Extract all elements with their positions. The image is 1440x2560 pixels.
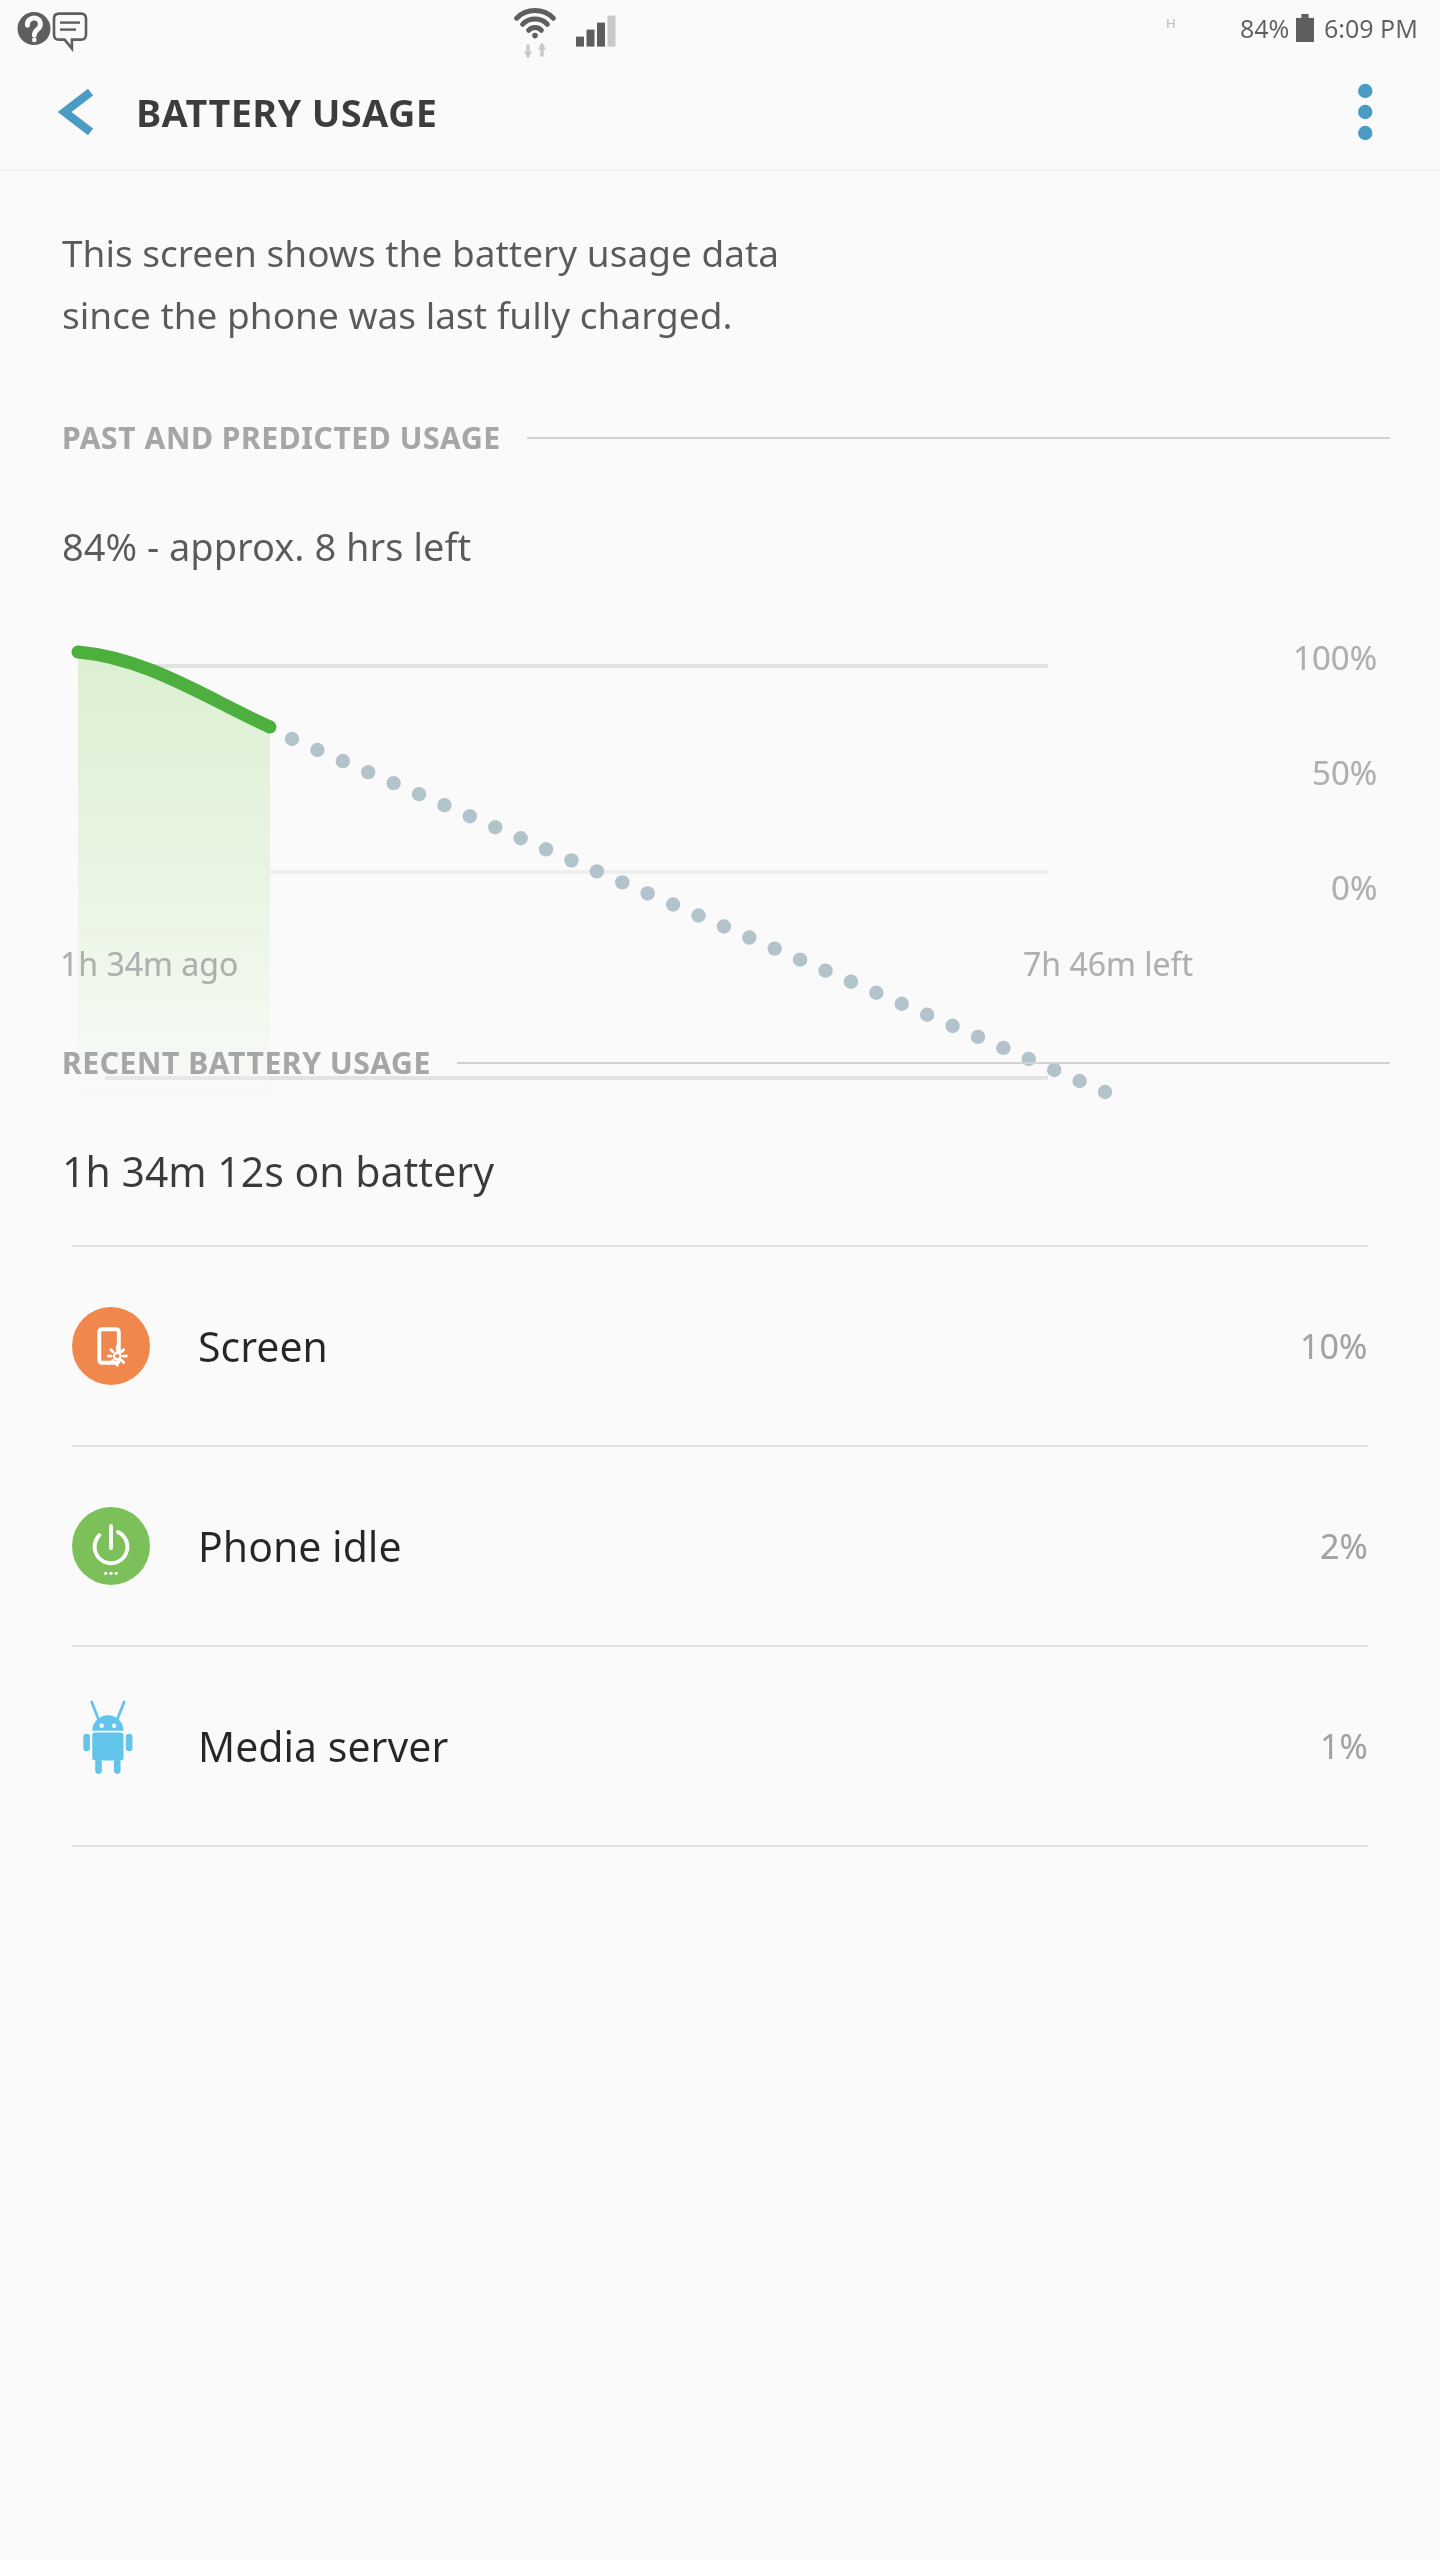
staticText: 100% (1293, 635, 1378, 680)
staticText: Media server (198, 1718, 449, 1774)
staticText: BATTERY USAGE (136, 86, 438, 138)
staticText: 84% - approx. 8 hrs left (62, 520, 472, 572)
staticText: 50% (1312, 750, 1378, 795)
staticText: PAST AND PREDICTED USAGE (62, 417, 501, 458)
staticText: 1% (1320, 1723, 1368, 1769)
staticText: 1h 34m 12s on battery (62, 1143, 495, 1199)
button[interactable]: More options (1326, 75, 1400, 149)
staticText: since the phone was last fully charged. (62, 289, 733, 339)
button[interactable]: Back (44, 83, 102, 141)
staticText: 1h 34m ago (60, 942, 239, 986)
staticText: 2% (1320, 1523, 1368, 1569)
staticText: 84% (1240, 11, 1290, 45)
staticText: Phone idle (198, 1518, 402, 1574)
staticText: Screen (198, 1318, 328, 1374)
button[interactable]: Screen (0, 1247, 1440, 1445)
staticText: 7h 46m left (1023, 942, 1194, 986)
button[interactable]: Phone idle (0, 1447, 1440, 1645)
staticText: 0% (1331, 865, 1378, 910)
staticText: 6:09 PM (1324, 11, 1418, 45)
staticText: 10% (1300, 1323, 1368, 1369)
button[interactable]: Media server (0, 1647, 1440, 1845)
staticText: H (1166, 14, 1176, 32)
staticText: This screen shows the battery usage data (62, 227, 780, 277)
staticText: RECENT BATTERY USAGE (62, 1042, 431, 1083)
